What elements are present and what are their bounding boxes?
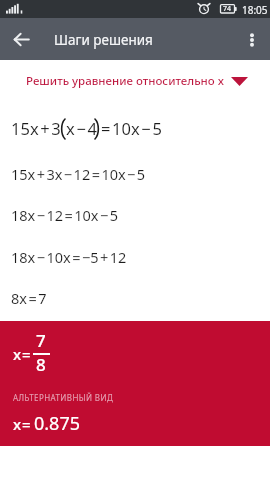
staticText: = [22,414,31,434]
staticText: = [22,344,31,364]
staticText: 18x − 12 = 10x − 5 [11,205,118,225]
staticText: x − 4 [66,117,97,139]
staticText: 7 [36,329,46,352]
staticText: 15x + 3 [11,117,61,139]
staticText: 74 [223,4,232,14]
staticText: 8 [36,353,46,376]
staticText: 0.875 [34,411,81,436]
staticText: = 10x − 5 [101,117,162,139]
staticText: 18:05 [242,3,268,17]
staticText: АЛЬТЕРНАТИВНЫЙ ВИД [13,392,114,403]
staticText: 8x = 7 [11,288,47,308]
staticText: 18x − 10x = −5 + 12 [11,247,127,267]
button[interactable]: More options [228,18,270,60]
button[interactable]: Решить уравнение относительно x [0,63,270,99]
staticText: 15x + 3x − 12 = 10x − 5 [11,164,146,184]
button[interactable]: Back [0,18,42,60]
staticText: x [13,344,22,364]
staticText: Шаги решения [54,31,153,49]
staticText: Решить уравнение относительно x [26,73,224,89]
staticText: x [13,414,22,434]
